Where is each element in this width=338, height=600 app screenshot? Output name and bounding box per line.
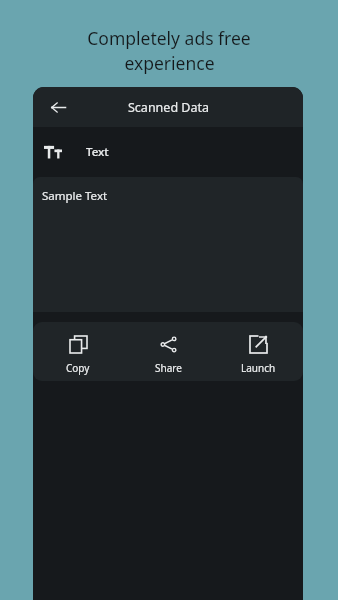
button[interactable]: Back [43, 92, 73, 122]
staticText: Launch [241, 361, 276, 375]
staticText: Scanned Data [128, 99, 209, 116]
staticText: Completely ads free [87, 26, 251, 50]
button[interactable]: Share [123, 322, 213, 381]
staticText: experience [124, 51, 215, 75]
staticText: Text [86, 144, 109, 160]
button[interactable]: Launch [213, 322, 303, 381]
staticText: Share [155, 361, 182, 375]
button[interactable]: Sample Text [33, 177, 303, 312]
button[interactable]: Text [33, 127, 303, 177]
staticText: Sample Text [42, 188, 108, 204]
button[interactable]: Copy [33, 322, 123, 381]
staticText: Copy [66, 361, 90, 375]
